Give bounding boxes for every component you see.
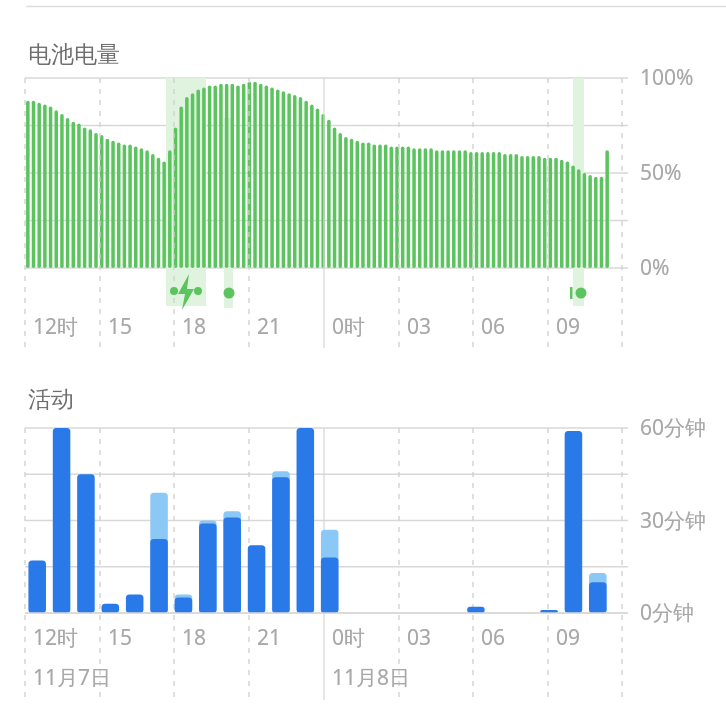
button[interactable]: Battery and activity statistics xyxy=(0,0,726,716)
